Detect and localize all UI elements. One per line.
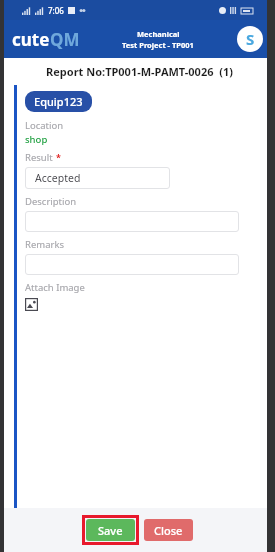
staticText: Description: [25, 195, 77, 208]
staticText: Accepted: [35, 171, 81, 185]
staticText: Result: [25, 151, 56, 164]
staticText: Location: [25, 119, 64, 132]
staticText: Report No:TP001-M-PAMT-0026 (1): [4, 64, 275, 79]
button[interactable]: Save: [86, 519, 135, 541]
staticText: Test Project - TP001: [122, 40, 194, 50]
staticText: Close: [154, 523, 183, 538]
staticText: cute: [12, 28, 50, 51]
staticText: Save: [98, 523, 123, 538]
button[interactable]: Profile: [237, 26, 263, 52]
button[interactable]: [25, 254, 239, 275]
button[interactable]: Close: [144, 519, 193, 541]
button[interactable]: [25, 211, 239, 232]
staticText: Mechanical: [137, 29, 180, 39]
staticText: Attach Image: [25, 281, 85, 294]
staticText: Equip123: [34, 94, 83, 109]
button[interactable]: Accepted: [25, 167, 170, 189]
staticText: QM: [50, 28, 80, 51]
staticText: *: [56, 151, 61, 163]
staticText: shop: [25, 133, 48, 146]
staticText: Remarks: [25, 238, 65, 251]
staticText: S: [246, 29, 255, 49]
button[interactable]: Attach image: [25, 298, 38, 311]
staticText: 7:06: [48, 5, 64, 16]
button[interactable]: Equip123: [25, 91, 92, 112]
